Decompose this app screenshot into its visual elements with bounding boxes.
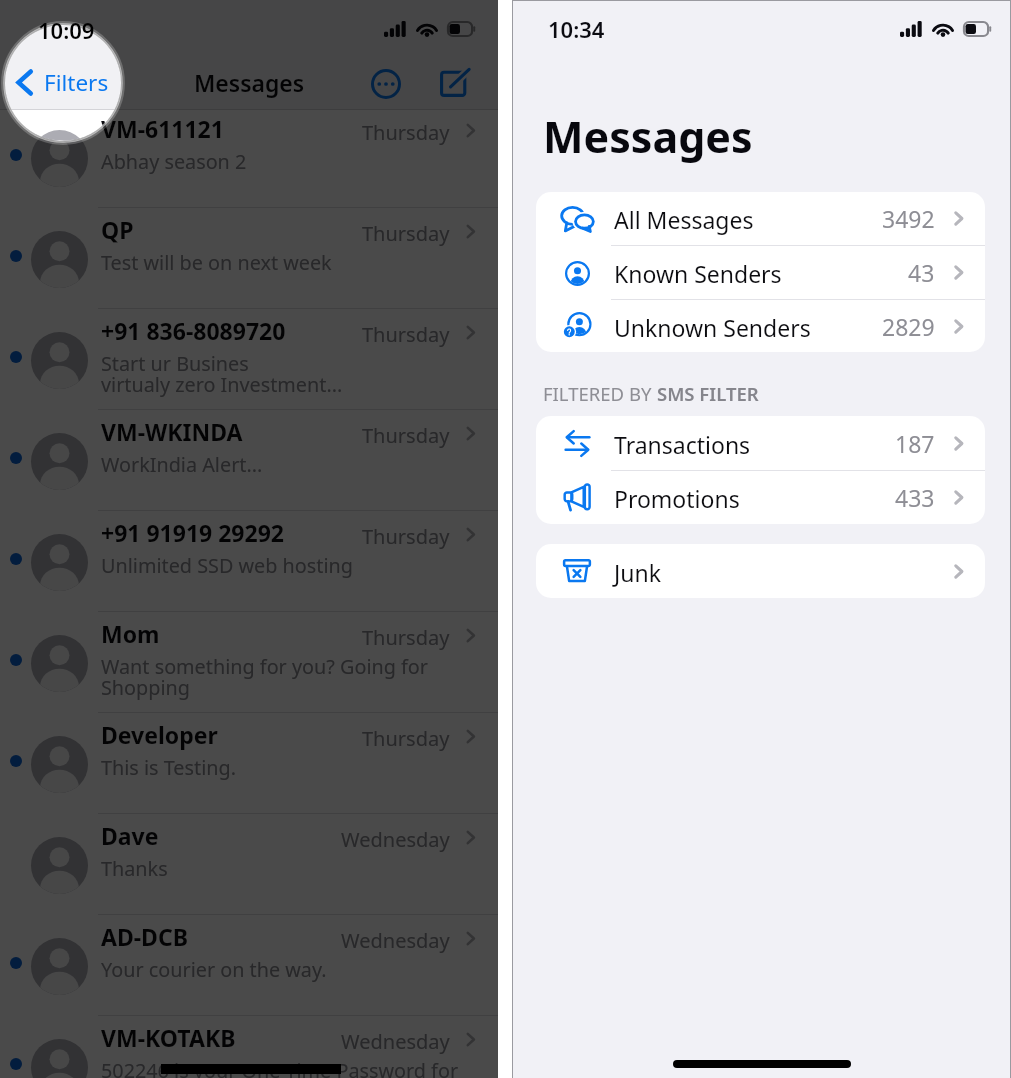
- staticText: VM-611121: [101, 113, 224, 144]
- staticText: Dave: [101, 820, 159, 851]
- staticText: Filters: [44, 67, 109, 98]
- staticText: 3492: [882, 203, 935, 234]
- staticText: Wednesday: [341, 927, 450, 954]
- staticText: 10:34: [548, 14, 605, 44]
- staticText: 10:09: [38, 15, 95, 45]
- button[interactable]: Transactions: [536, 416, 985, 470]
- staticText: Messages: [194, 67, 305, 98]
- staticText: Thursday: [362, 220, 450, 247]
- staticText: Unknown Senders: [614, 312, 811, 343]
- staticText: Thursday: [362, 523, 450, 550]
- staticText: Unlimited SSD web hosting: [101, 552, 353, 579]
- staticText: VM-WKINDA: [101, 416, 243, 447]
- button[interactable]: Filters: [11, 62, 115, 103]
- button[interactable]: Dave: [0, 814, 498, 915]
- button[interactable]: AD-DCB: [0, 915, 498, 1016]
- button[interactable]: Mom: [0, 612, 498, 713]
- staticText: Start ur Busines: [101, 350, 249, 377]
- staticText: Test will be on next week: [101, 249, 332, 276]
- staticText: Known Senders: [614, 258, 782, 289]
- button[interactable]: VM-WKINDA: [0, 410, 498, 511]
- button[interactable]: +91 91919 29292: [0, 511, 498, 612]
- staticText: +91 91919 29292: [101, 517, 284, 548]
- button[interactable]: VM-KOTAKB: [0, 1016, 498, 1078]
- staticText: 433: [895, 482, 935, 513]
- button[interactable]: Unknown Senders: [536, 300, 985, 352]
- button[interactable]: All Messages: [536, 192, 985, 245]
- staticText: Shopping: [101, 674, 190, 701]
- staticText: Transactions: [614, 429, 751, 460]
- staticText: Thursday: [362, 422, 450, 449]
- staticText: Developer: [101, 719, 218, 750]
- staticText: Wednesday: [341, 1028, 450, 1055]
- staticText: Thursday: [362, 725, 450, 752]
- staticText: Messages: [543, 107, 753, 166]
- staticText: Thursday: [362, 119, 450, 146]
- button[interactable]: +91 836-8089720: [0, 309, 498, 410]
- staticText: 43: [908, 257, 935, 288]
- staticText: Your courier on the way.: [101, 956, 327, 983]
- staticText: Abhay season 2: [101, 148, 247, 175]
- staticText: Wednesday: [341, 826, 450, 853]
- button[interactable]: More options: [363, 61, 409, 107]
- button[interactable]: QP: [0, 208, 498, 309]
- staticText: VM-KOTAKB: [101, 1022, 236, 1053]
- button[interactable]: Compose new message: [432, 60, 478, 106]
- staticText: +91 836-8089720: [101, 315, 286, 346]
- staticText: Promotions: [614, 483, 740, 514]
- staticText: This is Testing.: [101, 754, 236, 781]
- button[interactable]: Developer: [0, 713, 498, 814]
- staticText: Want something for you? Going for: [101, 653, 429, 680]
- staticText: WorkIndia Alert...: [101, 451, 263, 478]
- staticText: virtualy zero Investment...: [101, 371, 343, 398]
- button[interactable]: Junk: [536, 544, 985, 598]
- staticText: 2829: [882, 311, 935, 342]
- staticText: AD-DCB: [101, 921, 189, 952]
- staticText: Thursday: [362, 624, 450, 651]
- staticText: Mom: [101, 618, 160, 649]
- staticText: Thursday: [362, 321, 450, 348]
- staticText: QP: [101, 214, 134, 245]
- staticText: Thanks: [101, 855, 168, 882]
- button[interactable]: Known Senders: [536, 246, 985, 299]
- button[interactable]: VM-611121: [0, 107, 498, 208]
- staticText: SMS FILTER: [657, 381, 759, 406]
- staticText: 502246 is your One Time Password for: [101, 1057, 459, 1078]
- staticText: All Messages: [614, 204, 754, 235]
- button[interactable]: Promotions: [536, 471, 985, 524]
- staticText: 187: [895, 428, 935, 459]
- staticText: Junk: [614, 557, 661, 588]
- staticText: FILTERED BY: [543, 381, 657, 406]
